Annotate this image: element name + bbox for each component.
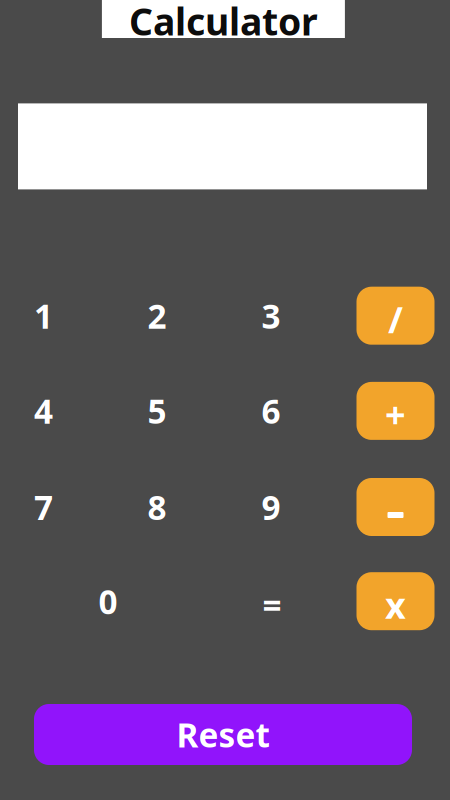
button[interactable]: 9 <box>223 469 319 545</box>
button[interactable]: / <box>356 287 434 345</box>
button[interactable]: 2 <box>109 278 205 354</box>
button[interactable]: x <box>356 572 434 630</box>
staticText: / <box>388 295 403 343</box>
button[interactable]: 4 <box>0 373 91 449</box>
staticText: 7 <box>34 485 53 529</box>
button[interactable]: 7 <box>0 469 91 545</box>
staticText: Reset <box>176 712 269 757</box>
staticText: 3 <box>261 294 280 338</box>
button[interactable]: 3 <box>223 278 319 354</box>
staticText: 5 <box>147 389 166 433</box>
button[interactable]: 0 <box>60 563 156 639</box>
button[interactable]: Minus <box>356 478 434 536</box>
staticText: 9 <box>261 485 280 529</box>
button[interactable]: 8 <box>109 469 205 545</box>
staticText: Calculator <box>129 0 318 46</box>
staticText: 0 <box>98 579 117 623</box>
button[interactable]: = <box>224 567 320 643</box>
button[interactable]: 5 <box>109 373 205 449</box>
staticText: 4 <box>34 389 53 433</box>
staticText: 6 <box>261 389 280 433</box>
button[interactable]: 1 <box>0 278 91 354</box>
button[interactable]: + <box>356 382 434 440</box>
staticText: = <box>262 583 281 627</box>
button[interactable]: Reset <box>34 704 412 765</box>
staticText: 1 <box>34 294 53 338</box>
staticText: 8 <box>147 485 166 529</box>
staticText: x <box>385 581 406 629</box>
button[interactable]: 6 <box>223 373 319 449</box>
staticText: 2 <box>147 294 166 338</box>
staticText: + <box>385 390 406 438</box>
